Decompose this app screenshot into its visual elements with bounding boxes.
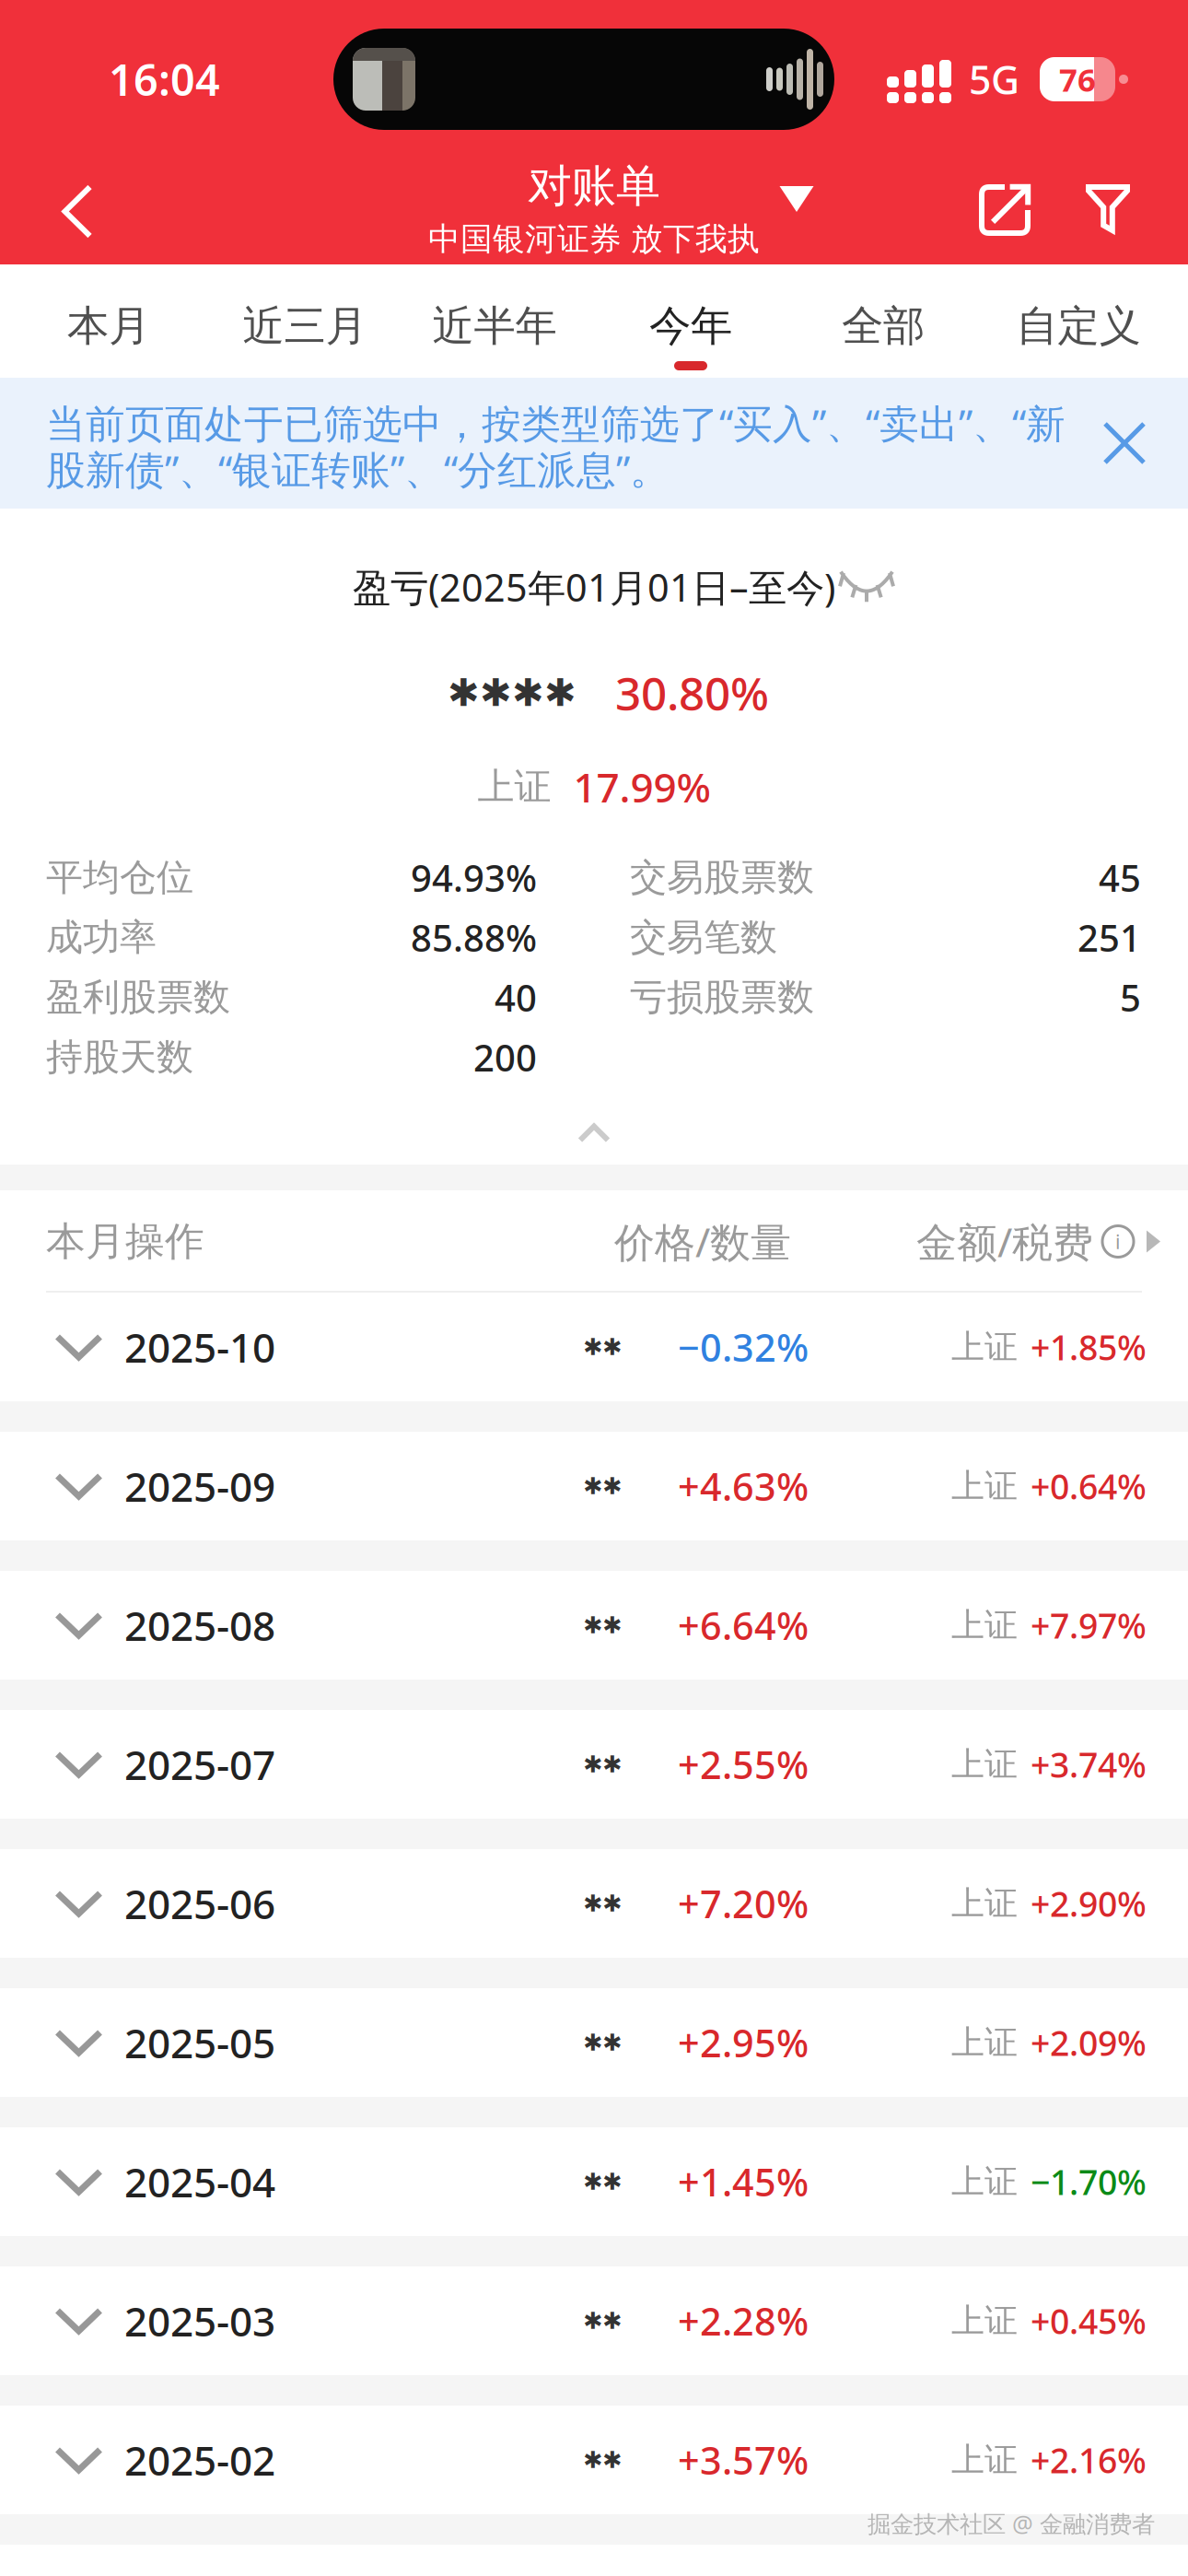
staticText: 2025-06 xyxy=(124,1877,275,1930)
button[interactable]: 2025-05 xyxy=(0,1988,1188,2097)
staticText: 94.93% xyxy=(411,853,537,902)
staticText: 交易股票数 xyxy=(630,855,814,900)
staticText: 成功率 xyxy=(46,915,157,960)
button[interactable]: 自定义 xyxy=(982,264,1175,378)
staticText: 上证 xyxy=(951,1744,1018,1785)
staticText: 上证 xyxy=(951,2022,1018,2063)
button[interactable]: Collapse summary xyxy=(493,1109,695,1157)
staticText: 2025-03 xyxy=(124,2294,275,2348)
button[interactable]: Switch statement type xyxy=(751,158,843,264)
staticText: 对账单 xyxy=(528,159,660,213)
staticText: 股新债”、“银证转账”、“分红派息”。 xyxy=(46,443,670,495)
staticText: 价格/数量 xyxy=(614,1215,791,1268)
staticText: +2.90% xyxy=(1031,1881,1147,1926)
staticText: 亏损股票数 xyxy=(630,975,814,1020)
staticText: +4.63% xyxy=(678,1461,809,1511)
button[interactable]: 2025-03 xyxy=(0,2266,1188,2375)
staticText: 自定义 xyxy=(1016,301,1141,352)
staticText: ✱✱ xyxy=(583,2447,622,2473)
button[interactable]: 2025-02 xyxy=(0,2406,1188,2514)
button[interactable]: Share xyxy=(953,158,1056,264)
button[interactable]: Filter xyxy=(1056,158,1159,264)
button[interactable]: 2025-08 xyxy=(0,1571,1188,1680)
button[interactable]: 今年 xyxy=(594,264,787,378)
staticText: +2.55% xyxy=(678,1739,809,1790)
staticText: +2.09% xyxy=(1031,2020,1147,2065)
staticText: 本月操作 xyxy=(46,1217,204,1266)
staticText: 45 xyxy=(1099,853,1141,902)
button[interactable]: 2025-06 xyxy=(0,1849,1188,1958)
button[interactable]: Dismiss filter notice xyxy=(1074,392,1175,494)
staticText: ✱✱ xyxy=(583,2308,622,2334)
staticText: ✱✱ xyxy=(583,2029,622,2056)
staticText: +2.95% xyxy=(678,2017,809,2068)
staticText: +7.97% xyxy=(1031,1602,1147,1648)
staticText: 2025-05 xyxy=(124,2016,275,2069)
staticText: ✱✱ xyxy=(583,1612,622,1638)
staticText: +1.85% xyxy=(1031,1324,1147,1370)
staticText: +2.28% xyxy=(678,2296,809,2346)
staticText: ✱✱ xyxy=(583,2168,622,2195)
staticText: 2025-07 xyxy=(124,1737,275,1791)
staticText: 平均仓位 xyxy=(46,855,193,900)
button[interactable]: 全部 xyxy=(786,264,980,378)
staticText: 上证 xyxy=(951,2161,1018,2202)
staticText: 2025-08 xyxy=(124,1598,275,1652)
staticText: 上证 xyxy=(951,1605,1018,1646)
staticText: +0.45% xyxy=(1031,2298,1147,2344)
staticText: −0.32% xyxy=(678,1322,809,1372)
button[interactable]: 2025-09 xyxy=(0,1432,1188,1540)
staticText: +0.64% xyxy=(1031,1463,1147,1509)
staticText: ✱✱ xyxy=(583,1473,622,1499)
staticText: 上证 xyxy=(951,1327,1018,1367)
staticText: 全部 xyxy=(842,301,925,352)
staticText: 76 xyxy=(1059,58,1096,100)
staticText: +1.45% xyxy=(678,2156,809,2207)
staticText: 40 xyxy=(495,973,537,1022)
staticText: 当前页面处于已筛选中，按类型筛选了“买入”、“卖出”、“新 xyxy=(46,397,1066,449)
button[interactable]: 近半年 xyxy=(398,264,591,378)
staticText: 今年 xyxy=(649,301,732,352)
button[interactable]: 2025-10 xyxy=(0,1293,1188,1401)
staticText: 5G xyxy=(969,53,1019,105)
staticText: 2025-04 xyxy=(124,2155,275,2209)
staticText: +7.20% xyxy=(678,1878,809,1929)
staticText: i xyxy=(1115,1228,1121,1254)
staticText: ✱✱ xyxy=(583,1751,622,1778)
staticText: 近三月 xyxy=(243,301,367,352)
staticText: 251 xyxy=(1077,913,1141,962)
staticText: 上证 xyxy=(951,1466,1018,1506)
button[interactable]: 近三月 xyxy=(208,264,402,378)
staticText: 金额/税费 xyxy=(916,1215,1093,1268)
staticText: +3.57% xyxy=(678,2435,809,2485)
button[interactable]: Back xyxy=(27,158,128,264)
staticText: 85.88% xyxy=(411,913,537,962)
staticText: ✱✱ xyxy=(583,1334,622,1360)
staticText: 盈亏(2025年01月01日–至今) xyxy=(353,562,835,612)
staticText: ✱✱✱✱ xyxy=(448,671,577,714)
staticText: −1.70% xyxy=(1031,2159,1147,2205)
staticText: 2025-02 xyxy=(124,2433,275,2487)
staticText: 掘金技术社区 @ 金融消费者 xyxy=(868,2508,1155,2539)
staticText: 200 xyxy=(473,1033,537,1082)
staticText: +6.64% xyxy=(678,1600,809,1651)
button[interactable]: 2025-04 xyxy=(0,2127,1188,2236)
staticText: 5 xyxy=(1120,973,1141,1022)
staticText: +2.16% xyxy=(1031,2437,1147,2483)
staticText: ✱✱ xyxy=(583,1890,622,1917)
staticText: 交易笔数 xyxy=(630,915,777,960)
staticText: 本月 xyxy=(67,301,150,352)
button[interactable]: 本月 xyxy=(12,264,205,378)
staticText: 近半年 xyxy=(432,301,557,352)
staticText: +3.74% xyxy=(1031,1741,1147,1787)
staticText: 2025-09 xyxy=(124,1459,275,1513)
button[interactable]: 2025-07 xyxy=(0,1710,1188,1819)
staticText: 16:04 xyxy=(109,51,220,108)
staticText: 上证 xyxy=(951,1883,1018,1924)
staticText: 2025-10 xyxy=(124,1320,275,1374)
staticText: 盈利股票数 xyxy=(46,975,230,1020)
staticText: 上证 xyxy=(478,764,551,809)
staticText: 中国银河证券 放下我执 xyxy=(428,219,760,259)
staticText: 30.80% xyxy=(615,663,769,723)
staticText: 持股天数 xyxy=(46,1035,193,1080)
